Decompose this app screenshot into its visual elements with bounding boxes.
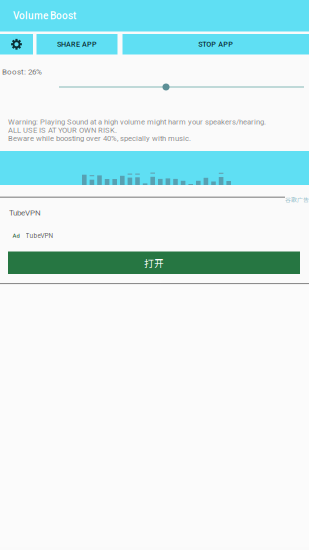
staticText: Warning: Playing Sound at a high volume … <box>8 117 266 126</box>
button[interactable]: STOP APP <box>122 34 309 54</box>
button[interactable]: SHARE APP <box>36 34 117 54</box>
staticText: TubeVPN <box>25 232 53 239</box>
button[interactable]: Settings <box>0 34 33 54</box>
staticText: Boost: 26% <box>2 67 42 76</box>
staticText: ALL USE IS AT YOUR OWN RISK. <box>8 126 117 135</box>
staticText: Ad <box>12 232 19 239</box>
staticText: STOP APP <box>198 40 233 48</box>
staticText: SHARE APP <box>57 40 97 48</box>
staticText: Beware while boosting over 40%, speciall… <box>8 134 191 143</box>
staticText: TubeVPN <box>9 208 41 217</box>
button[interactable]: 打开 <box>8 251 300 274</box>
staticText: Volume Boost <box>13 10 76 22</box>
staticText: 打开 <box>144 256 164 270</box>
staticText: 谷歌广告 <box>285 195 309 204</box>
